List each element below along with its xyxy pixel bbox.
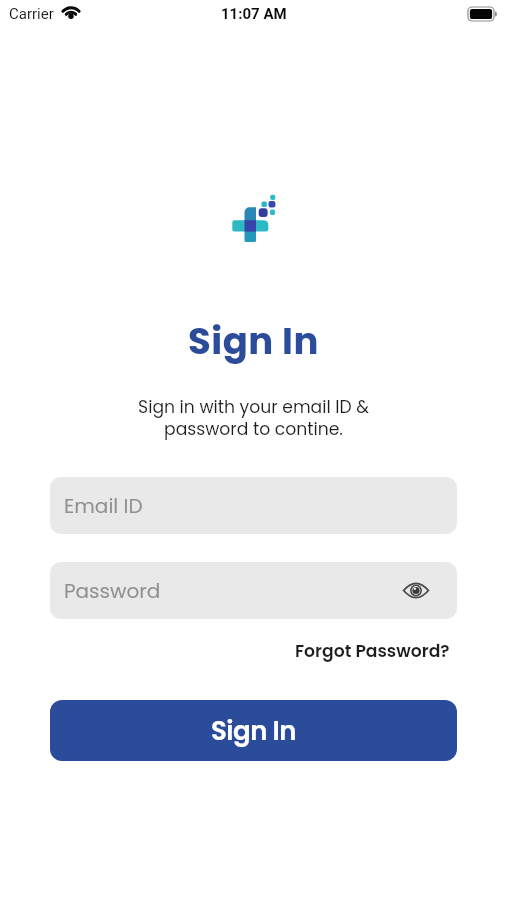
staticText: Forgot Password?	[295, 639, 450, 663]
staticText: Email ID	[64, 492, 143, 520]
staticText: Sign In	[188, 315, 319, 367]
staticText: 11:07 AM	[221, 5, 287, 23]
staticText: Carrier	[9, 5, 54, 23]
button[interactable]: Sign In	[50, 700, 457, 761]
button[interactable]: Email ID	[50, 477, 457, 534]
button[interactable]: Forgot Password?	[295, 639, 450, 663]
staticText: Sign in with your email ID & password to…	[138, 395, 369, 441]
staticText: Password	[64, 577, 161, 605]
button[interactable]: Password	[50, 562, 457, 619]
staticText: Sign In	[211, 713, 296, 749]
